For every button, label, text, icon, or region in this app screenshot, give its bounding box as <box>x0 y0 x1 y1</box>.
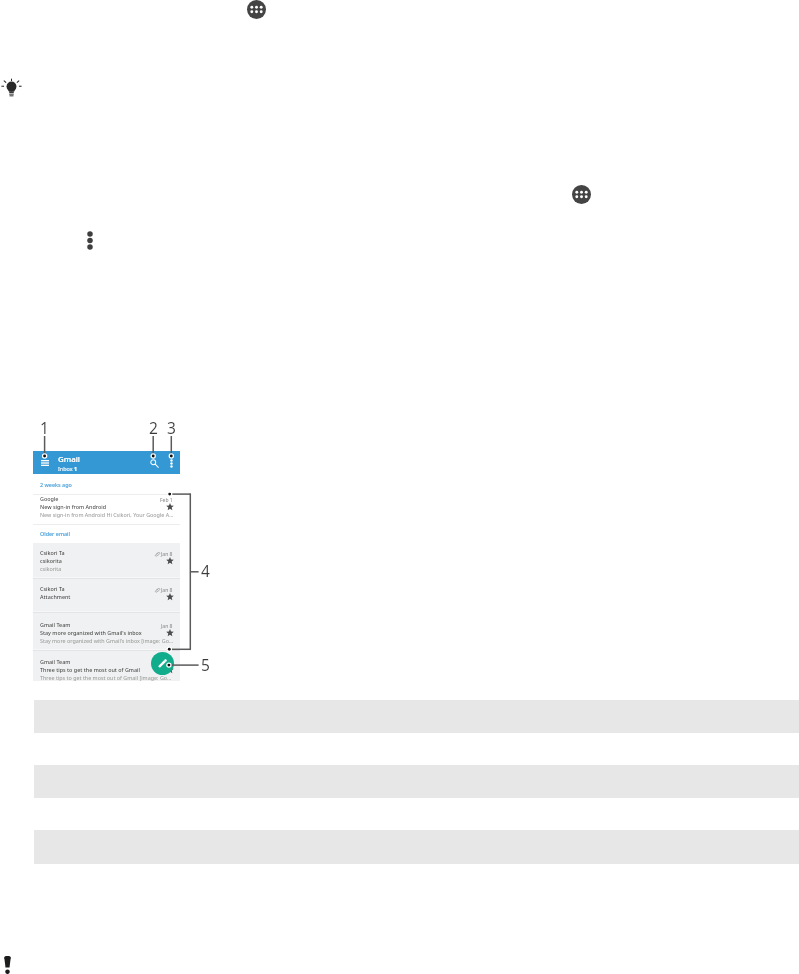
staticText: Three tips to get the most out of Gmail <box>40 666 152 673</box>
button[interactable]: Navigation menu <box>33 451 180 474</box>
staticText: Three tips to get the most out of Gmail … <box>40 674 174 681</box>
button[interactable]: Csikori Ta <box>33 584 180 604</box>
staticText: Feb 1 <box>160 497 173 504</box>
staticText: Jan 8 <box>161 587 173 594</box>
staticText: 3 <box>167 417 176 438</box>
staticText: 1 <box>74 465 78 472</box>
staticText: Gmail Team <box>40 658 152 665</box>
staticText: csikorita <box>40 565 174 572</box>
staticText: 1 <box>40 417 49 438</box>
staticText: 4 <box>201 560 210 581</box>
staticText: 5 <box>201 654 210 675</box>
staticText: Csikori Ta <box>40 549 152 556</box>
staticText: Gmail Team <box>40 621 152 628</box>
other: More options <box>170 459 173 468</box>
other: Search <box>150 459 159 468</box>
staticText: csikorita <box>40 557 152 564</box>
button[interactable]: Compose new email <box>151 652 174 675</box>
staticText: 2 <box>149 417 158 438</box>
button[interactable]: Gmail Team <box>33 620 180 648</box>
staticText: Jan 8 <box>161 551 173 558</box>
staticText: Csikori Ta <box>40 585 152 592</box>
other: Navigation menu <box>41 460 49 466</box>
staticText: Jan 8 <box>161 623 173 630</box>
button[interactable]: Gmail Team <box>33 657 180 685</box>
staticText: New sign-in from Android Hi Csikori, You… <box>40 511 174 518</box>
staticText: 2 weeks ago <box>40 481 72 488</box>
staticText: Gmail <box>58 454 80 465</box>
staticText: Stay more organized with Gmail's inbox [… <box>40 637 174 644</box>
staticText: New sign-in from Android <box>40 503 152 510</box>
button[interactable]: Apps <box>247 0 266 19</box>
button[interactable]: More options <box>87 231 93 250</box>
button[interactable]: Csikori Ta <box>33 548 180 576</box>
staticText: Stay more organized with Gmail's inbox <box>40 629 152 636</box>
staticText: Inbox <box>58 465 74 472</box>
staticText: Older email <box>40 530 70 537</box>
staticText: Google <box>40 495 152 502</box>
staticText: Attachment <box>40 593 152 600</box>
button[interactable]: Google <box>33 494 180 522</box>
button[interactable]: Apps <box>572 185 591 204</box>
